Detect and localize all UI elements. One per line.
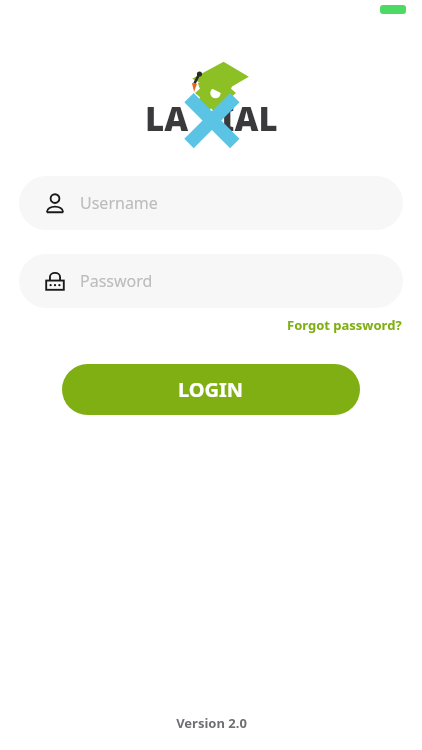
staticText: IAL (220, 96, 278, 141)
staticText: LOGIN (178, 376, 244, 403)
staticText: Forgot password? (287, 316, 402, 334)
button[interactable]: Forgot password? (285, 313, 404, 337)
staticText: Version 2.0 (176, 714, 247, 732)
button[interactable]: Username (19, 176, 403, 230)
staticText: Password (80, 270, 153, 292)
staticText: LA (145, 96, 189, 141)
staticText: Username (80, 192, 158, 214)
button[interactable]: LOGIN (62, 364, 360, 415)
button[interactable]: Password (19, 254, 403, 308)
